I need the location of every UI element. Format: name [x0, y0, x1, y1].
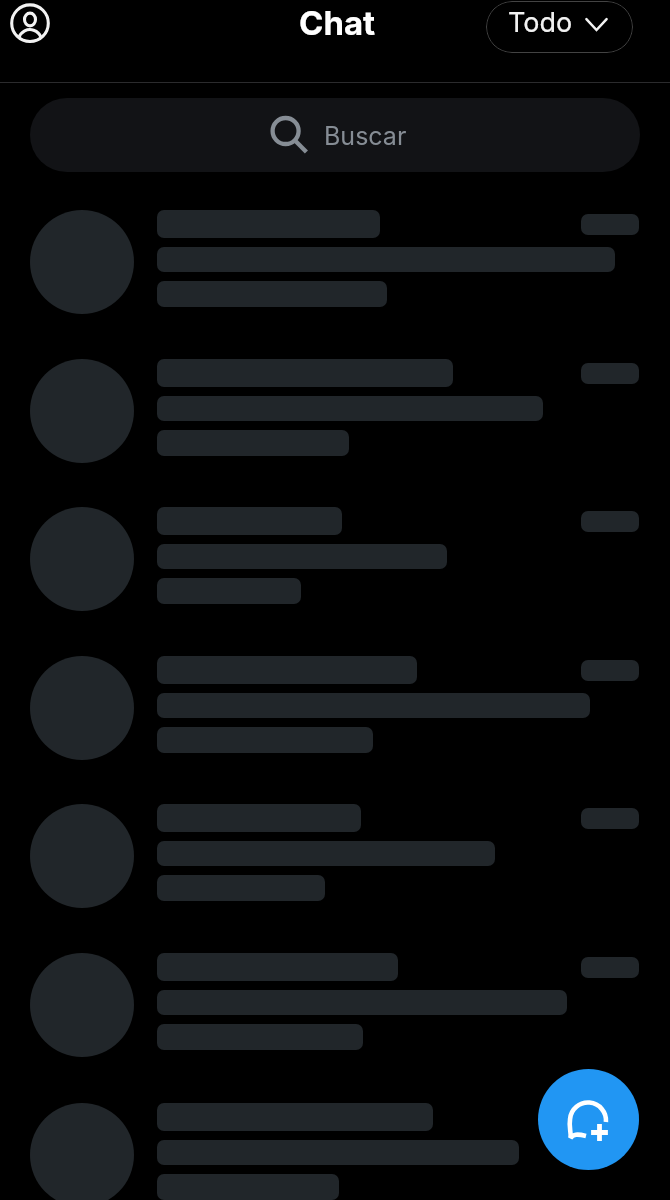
button[interactable]: Buscar [30, 98, 640, 172]
button[interactable] [0, 951, 670, 1100]
staticText: Buscar [324, 121, 407, 151]
button[interactable]: Profile [0, 0, 60, 47]
button[interactable] [0, 802, 670, 951]
staticText: Chat [299, 3, 376, 43]
button[interactable] [0, 505, 670, 654]
button[interactable] [0, 1101, 670, 1200]
button[interactable] [0, 208, 670, 357]
button[interactable] [0, 357, 670, 506]
button[interactable]: Todo [486, 1, 633, 53]
staticText: Todo [508, 6, 573, 39]
button[interactable]: New chat [538, 1069, 639, 1170]
button[interactable] [0, 654, 670, 803]
